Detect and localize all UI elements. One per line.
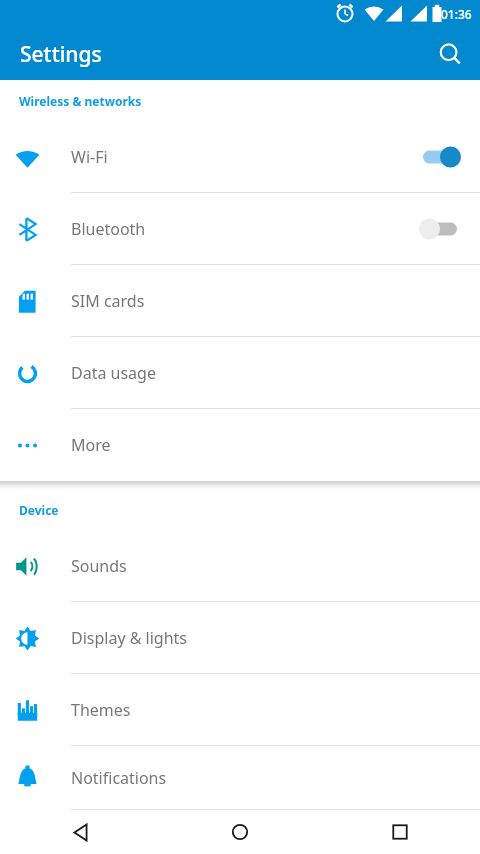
staticText: Bluetooth [71,218,146,240]
button[interactable]: Data usage [0,337,480,409]
staticText: Wireless & networks [19,93,142,109]
staticText: 01:36 [441,6,472,22]
button[interactable]: More [0,409,480,481]
staticText: Data usage [71,362,156,384]
button[interactable]: Home [160,810,320,854]
staticText: Device [19,502,59,518]
button[interactable]: Bluetooth [0,193,480,265]
button[interactable]: Search [426,30,474,78]
button[interactable]: Recent apps [320,810,480,854]
button[interactable]: Notifications [0,746,480,810]
button[interactable]: Back [0,810,160,854]
button[interactable]: Wi-Fi toggle [414,140,466,174]
button[interactable]: Sounds [0,530,480,602]
staticText: Display & lights [71,627,188,649]
staticText: Notifications [71,767,167,789]
staticText: Settings [20,40,102,69]
button[interactable]: SIM cards [0,265,480,337]
staticText: Themes [71,699,131,721]
button[interactable]: Wi-Fi [0,121,480,193]
button[interactable]: Themes [0,674,480,746]
button[interactable]: Display & lights [0,602,480,674]
button[interactable]: Bluetooth toggle [414,212,466,246]
staticText: Wi-Fi [71,146,108,168]
staticText: Sounds [71,555,127,577]
staticText: SIM cards [71,290,145,312]
staticText: More [71,434,111,456]
